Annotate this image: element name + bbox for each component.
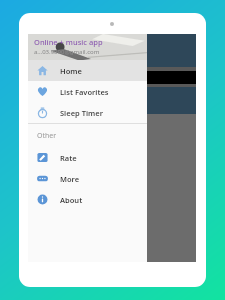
button[interactable]: About [28,189,147,210]
button[interactable]: More [28,168,147,189]
button[interactable]: List Favorites [28,81,147,102]
staticText: More [60,174,80,184]
staticText: a...03.9090@gmail.com [34,48,100,56]
staticText: Sleep Timer [60,108,103,118]
button[interactable]: Rate [28,147,147,168]
staticText: Rate [60,153,77,163]
button[interactable]: Home [28,60,147,81]
staticText: Other [37,131,57,141]
button[interactable]: Sleep Timer [28,102,147,123]
staticText: About [60,195,83,205]
staticText: Online + music app [34,37,103,47]
staticText: List Favorites [60,87,109,97]
button[interactable]: Online + music app [28,34,147,60]
staticText: Home [60,66,82,76]
